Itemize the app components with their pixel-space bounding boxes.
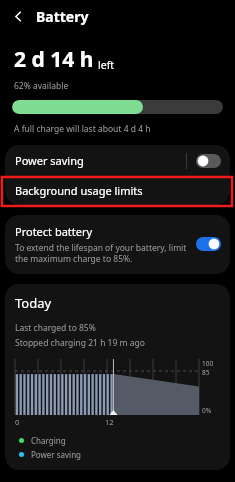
staticText: 2 d 14 h: [14, 45, 94, 74]
staticText: 62% available: [14, 80, 69, 92]
staticText: Protect battery: [15, 224, 93, 239]
staticText: 100: [202, 359, 214, 368]
staticText: To extend the lifespan of your battery, …: [15, 242, 188, 264]
staticText: Last charged to 85%: [15, 322, 96, 334]
button[interactable]: Power saving: [5, 145, 230, 176]
staticText: 0: [15, 417, 20, 427]
staticText: A full charge will last about 4 d 4 h: [14, 123, 151, 135]
button[interactable]: Protect battery: [5, 215, 230, 274]
staticText: Stopped charging 21 h 19 m ago: [15, 337, 145, 349]
staticText: 12: [105, 417, 114, 427]
staticText: Background usage limits: [15, 183, 143, 198]
button[interactable]: Today: [5, 284, 230, 470]
staticText: Battery: [36, 7, 89, 26]
staticText: Charging: [31, 435, 66, 446]
staticText: Power saving: [15, 153, 84, 168]
staticText: Power saving: [31, 449, 82, 460]
button[interactable]: Toggle on: [196, 237, 221, 251]
staticText: 85: [202, 368, 210, 377]
button[interactable]: Background usage limits: [5, 176, 230, 205]
staticText: 0%: [202, 406, 212, 415]
button[interactable]: Toggle off: [196, 154, 221, 168]
staticText: Today: [15, 294, 52, 312]
staticText: left: [98, 58, 115, 72]
button[interactable]: Back: [7, 5, 29, 27]
